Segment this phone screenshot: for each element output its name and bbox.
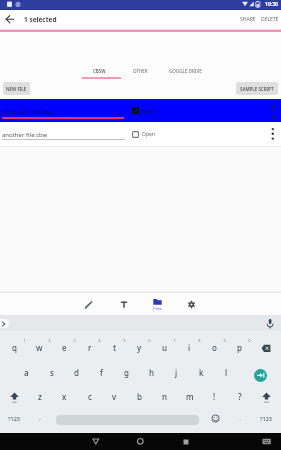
button[interactable]: ?	[227, 389, 252, 404]
button[interactable]	[136, 437, 145, 446]
button[interactable]	[268, 101, 278, 119]
staticText: g	[124, 367, 129, 378]
staticText: m	[186, 391, 194, 402]
staticText: GOOGLE DRIVE	[169, 68, 202, 74]
button[interactable]: v	[102, 389, 127, 404]
button[interactable]: t	[102, 340, 127, 355]
staticText: k	[199, 367, 204, 378]
button[interactable]	[120, 301, 128, 309]
button[interactable]	[0, 122, 281, 146]
staticText: .	[239, 414, 241, 422]
button[interactable]: i	[177, 340, 202, 355]
staticText: u	[162, 342, 168, 353]
button[interactable]: m	[177, 389, 202, 404]
button[interactable]: x	[52, 389, 77, 404]
staticText: 4	[98, 338, 101, 343]
button[interactable]: s	[39, 365, 64, 380]
button[interactable]	[0, 99, 281, 122]
staticText: Files	[153, 306, 162, 311]
staticText: CBSW	[93, 68, 106, 74]
staticText: l	[225, 367, 228, 378]
button[interactable]	[5, 14, 15, 25]
button[interactable]	[211, 414, 220, 423]
staticText: Open	[142, 131, 155, 138]
button[interactable]: c	[77, 389, 102, 404]
staticText: i	[188, 342, 191, 353]
button[interactable]: g	[114, 365, 139, 380]
staticText: 10:30	[265, 1, 278, 8]
staticText: 1 selected	[24, 15, 57, 24]
staticText: v	[112, 391, 117, 402]
button[interactable]: k	[189, 365, 214, 380]
button[interactable]: d	[64, 365, 89, 380]
button[interactable]: SAMPLE SCRIPT	[236, 82, 278, 95]
staticText: ?123	[260, 415, 272, 422]
button[interactable]: w	[27, 340, 52, 355]
staticText: f	[100, 367, 103, 378]
staticText: ?	[238, 391, 242, 402]
staticText: o	[212, 342, 217, 353]
button[interactable]: n	[152, 389, 177, 404]
button[interactable]: SHARE	[238, 14, 258, 25]
staticText: 7	[173, 338, 176, 343]
staticText: SAMPLE SCRIPT	[240, 86, 274, 92]
button[interactable]: o	[202, 340, 227, 355]
staticText: OTHER	[133, 68, 148, 74]
button[interactable]: OTHER	[128, 64, 152, 78]
staticText: 5	[123, 338, 126, 343]
staticText: e	[62, 342, 67, 353]
staticText: SHARE	[240, 16, 256, 23]
button[interactable]: z	[27, 389, 52, 404]
button[interactable]	[84, 300, 93, 309]
staticText: h	[149, 367, 155, 378]
button[interactable]: e	[52, 340, 77, 355]
button[interactable]	[10, 392, 19, 403]
staticText: 9	[223, 338, 226, 343]
staticText: 3	[73, 338, 76, 343]
button[interactable]	[132, 107, 140, 115]
staticText: Open	[142, 108, 155, 115]
button[interactable]: GOOGLE DRIVE	[160, 64, 210, 78]
staticText: b	[137, 391, 142, 402]
button[interactable]	[262, 392, 271, 403]
staticText: a	[24, 367, 29, 378]
button[interactable]: l	[214, 365, 239, 380]
button[interactable]: !	[202, 389, 227, 404]
button[interactable]	[92, 438, 100, 445]
staticText: c	[88, 391, 92, 402]
button[interactable]	[183, 439, 189, 445]
button[interactable]: h	[139, 365, 164, 380]
button[interactable]: NEW FILE	[3, 82, 30, 95]
button[interactable]: u	[152, 340, 177, 355]
button[interactable]	[254, 369, 267, 382]
button[interactable]: j	[164, 365, 189, 380]
button[interactable]: DELETE	[260, 14, 280, 25]
button[interactable]	[0, 319, 9, 328]
button[interactable]	[147, 294, 167, 312]
staticText: z	[38, 391, 42, 402]
button[interactable]: b	[127, 389, 152, 404]
button[interactable]: q	[2, 340, 27, 355]
staticText: NEW FILE	[6, 86, 27, 92]
button[interactable]	[188, 301, 195, 308]
staticText: cbsw_sample.cbw	[2, 108, 53, 116]
staticText: ?123	[8, 415, 20, 422]
staticText: p	[237, 342, 242, 353]
button[interactable]: y	[127, 340, 152, 355]
button[interactable]	[265, 318, 275, 330]
button[interactable]: CBSW	[84, 64, 114, 78]
staticText: another file.cbw	[2, 131, 48, 139]
staticText: ,	[39, 414, 41, 422]
staticText: x	[62, 391, 67, 402]
button[interactable]	[268, 124, 278, 142]
button[interactable]	[132, 131, 139, 138]
button[interactable]: r	[77, 340, 102, 355]
staticText: s	[50, 367, 54, 378]
button[interactable]: f	[89, 365, 114, 380]
button[interactable]: a	[14, 365, 39, 380]
button[interactable]	[262, 438, 271, 445]
staticText: 0	[248, 338, 251, 343]
button[interactable]	[261, 344, 271, 353]
button[interactable]: p	[227, 340, 252, 355]
